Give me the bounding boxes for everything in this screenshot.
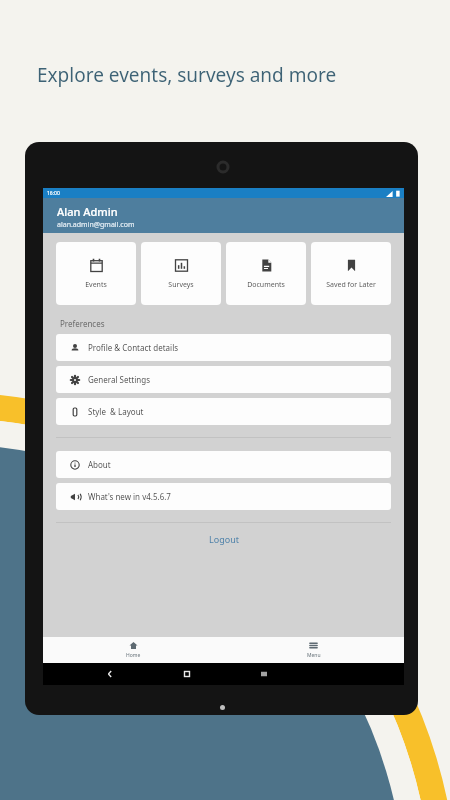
button[interactable]: Style & Layout: [56, 398, 391, 425]
button[interactable]: Surveys: [141, 242, 221, 305]
button[interactable]: Saved for Later: [311, 242, 391, 305]
staticText: Style & Layout: [88, 406, 144, 417]
staticText: General Settings: [88, 374, 151, 385]
button[interactable]: Logout: [56, 533, 391, 545]
staticText: Saved for Later: [326, 280, 376, 290]
button[interactable]: About: [56, 451, 391, 478]
button[interactable]: Events: [56, 242, 136, 305]
staticText: Logout: [209, 533, 239, 545]
staticText: Documents: [247, 280, 285, 290]
staticText: 16:00: [47, 190, 60, 197]
staticText: Profile & Contact details: [88, 342, 179, 353]
staticText: Home: [126, 652, 141, 659]
staticText: Menu: [307, 652, 321, 659]
button[interactable]: Documents: [226, 242, 306, 305]
button[interactable]: General Settings: [56, 366, 391, 393]
button[interactable]: Menu: [223, 637, 404, 663]
staticText: Surveys: [168, 280, 194, 290]
button[interactable]: Home: [43, 637, 223, 663]
staticText: Alan Admin: [57, 204, 118, 219]
staticText: About: [88, 459, 111, 470]
staticText: Preferences: [60, 318, 105, 329]
staticText: Events: [85, 280, 107, 290]
button[interactable]: What's new in v4.5.6.7: [56, 483, 391, 510]
other: Back: [105, 669, 115, 679]
other: Recents: [259, 669, 269, 679]
button[interactable]: Profile & Contact details: [56, 334, 391, 361]
staticText: alan.admin@gmail.com: [57, 220, 135, 230]
other: Home: [182, 669, 192, 679]
staticText: Explore events, surveys and more: [37, 62, 337, 88]
staticText: What's new in v4.5.6.7: [88, 491, 171, 502]
